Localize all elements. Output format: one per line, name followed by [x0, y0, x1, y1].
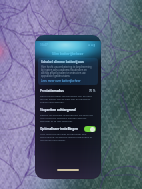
button[interactable]: Stopzetten achtergrond: [36, 106, 100, 123]
button[interactable]: Prestatiemodus: [36, 87, 100, 104]
staticText: Deze functie geeft de prestaties van de …: [40, 94, 96, 103]
button[interactable]: Slim batterijbeheer: [36, 50, 100, 56]
staticText: Prestatiemodus: [40, 89, 64, 93]
staticText: Stopzetten achtergrond: [40, 108, 76, 112]
button[interactable]: Schakel slimme batterij aan: [38, 58, 98, 85]
staticText: Schakel slimme batterij aan: [41, 60, 84, 64]
staticText: 70 %: [89, 89, 96, 93]
staticText: Hier hecht uw verbetering te bescherming…: [41, 65, 95, 77]
staticText: ▪ ▪ ▮: [88, 43, 96, 47]
button[interactable]: Lees meer over batterijbeheer: [41, 79, 81, 83]
staticText: Optimaliseer instellingen: [40, 127, 78, 131]
staticText: Slim batterijbeheer: [52, 51, 84, 56]
staticText: Voor elke functie vindt je hieronder een…: [40, 132, 96, 141]
staticText: Beperk de activiteit achtergrond. De app…: [40, 113, 96, 122]
button[interactable]: Optimaliseer instellingen: [36, 125, 100, 142]
button[interactable]: Toggle setting: [84, 126, 96, 132]
staticText: 16:47: [40, 43, 48, 47]
